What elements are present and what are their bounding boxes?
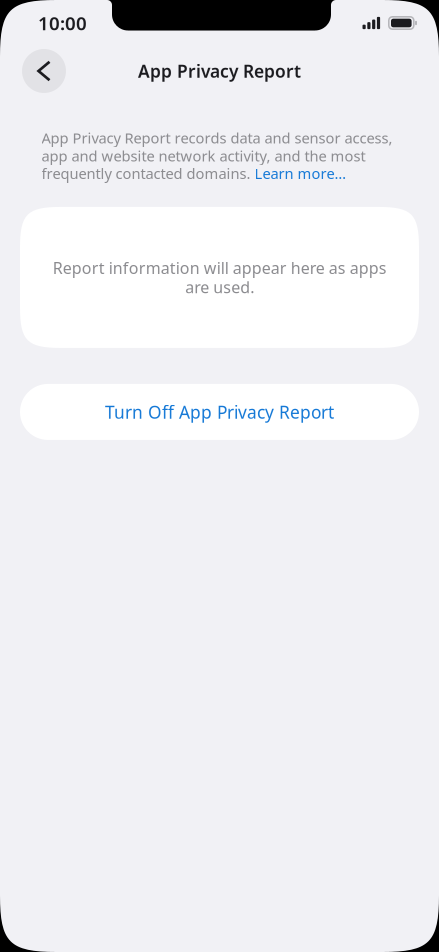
button[interactable]: Turn Off App Privacy Report xyxy=(20,384,419,440)
button[interactable]: Learn more… xyxy=(254,163,346,183)
staticText: Turn Off App Privacy Report xyxy=(105,400,334,423)
staticText: Report information will appear here as a… xyxy=(52,257,386,298)
staticText: App Privacy Report xyxy=(138,59,301,82)
staticText: 10:00 xyxy=(38,11,87,35)
staticText: Learn more… xyxy=(254,163,346,183)
staticText: frequently contacted domains. xyxy=(41,163,254,183)
button[interactable]: Back xyxy=(22,49,66,93)
staticText: App Privacy Report records data and sens… xyxy=(41,128,392,165)
